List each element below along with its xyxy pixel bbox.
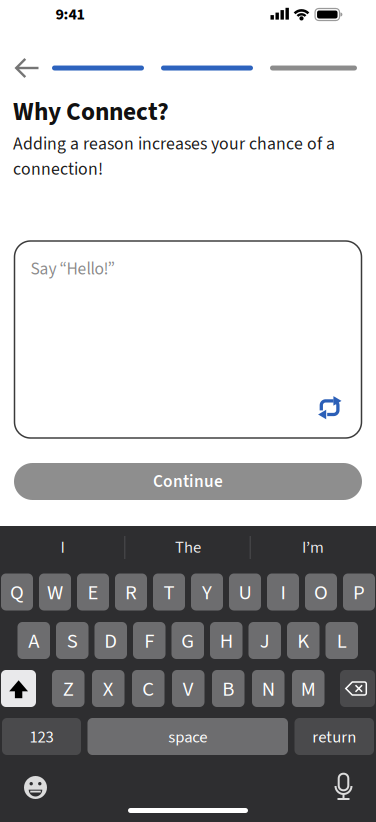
staticText: T: [163, 578, 174, 607]
staticText: G: [181, 627, 194, 656]
button[interactable]: Y: [191, 573, 223, 610]
button[interactable]: D: [94, 622, 127, 659]
button[interactable]: 123: [2, 718, 81, 755]
staticText: P: [353, 578, 365, 607]
staticText: N: [262, 675, 275, 704]
button[interactable]: Back: [0, 0, 376, 822]
staticText: W: [47, 578, 63, 607]
button[interactable]: space: [87, 718, 288, 755]
button[interactable]: F: [133, 622, 165, 659]
staticText: O: [314, 578, 328, 607]
button[interactable]: Q: [1, 573, 33, 610]
staticText: X: [103, 675, 114, 704]
staticText: J: [260, 627, 270, 656]
button[interactable]: Delete: [340, 670, 375, 707]
staticText: Say “Hello!”: [30, 256, 114, 281]
staticText: I: [60, 536, 64, 559]
button[interactable]: Emoji: [15, 767, 55, 807]
staticText: V: [183, 675, 194, 704]
button[interactable]: N: [252, 670, 284, 707]
staticText: H: [220, 627, 233, 656]
staticText: L: [337, 627, 347, 656]
staticText: Why Connect?: [13, 94, 169, 130]
button[interactable]: X: [92, 670, 124, 707]
button[interactable]: R: [115, 573, 147, 610]
button[interactable]: T: [153, 573, 185, 610]
button[interactable]: M: [292, 670, 324, 707]
button[interactable]: Z: [52, 670, 84, 707]
staticText: Y: [202, 578, 212, 607]
button[interactable]: P: [343, 573, 375, 610]
staticText: U: [238, 578, 251, 607]
button[interactable]: Continue: [14, 463, 362, 500]
staticText: I’m: [302, 536, 324, 559]
staticText: C: [142, 675, 154, 704]
staticText: M: [301, 675, 316, 704]
staticText: Continue: [153, 469, 223, 494]
button[interactable]: Dictation: [323, 767, 363, 807]
button[interactable]: S: [56, 622, 88, 659]
staticText: B: [222, 675, 234, 704]
staticText: S: [67, 627, 78, 656]
button[interactable]: I: [267, 573, 299, 610]
staticText: Z: [63, 675, 74, 704]
button[interactable]: E: [77, 573, 109, 610]
staticText: I: [280, 578, 285, 607]
staticText: 123: [29, 725, 53, 749]
staticText: K: [297, 627, 309, 656]
button[interactable]: U: [229, 573, 261, 610]
button[interactable]: W: [39, 573, 71, 610]
button[interactable]: Reason text field: [14, 241, 361, 438]
button[interactable]: I: [7, 530, 117, 564]
button[interactable]: return: [294, 718, 374, 755]
staticText: return: [312, 725, 356, 749]
staticText: Q: [10, 578, 24, 607]
button[interactable]: H: [210, 622, 242, 659]
staticText: The: [175, 536, 201, 559]
button[interactable]: A: [17, 622, 50, 659]
staticText: Adding a reason increases your chance of…: [13, 131, 335, 182]
staticText: R: [125, 578, 137, 607]
staticText: 9:41: [55, 3, 84, 26]
staticText: E: [87, 578, 98, 607]
button[interactable]: L: [325, 622, 358, 659]
button[interactable]: Shuffle suggestion: [314, 392, 344, 422]
staticText: A: [28, 627, 39, 656]
button[interactable]: C: [132, 670, 164, 707]
staticText: space: [168, 725, 207, 749]
button[interactable]: G: [171, 622, 204, 659]
button[interactable]: O: [305, 573, 337, 610]
button[interactable]: B: [212, 670, 244, 707]
button[interactable]: K: [287, 622, 319, 659]
button[interactable]: The: [133, 530, 243, 564]
button[interactable]: V: [172, 670, 204, 707]
button[interactable]: I’m: [258, 530, 368, 564]
staticText: F: [144, 627, 154, 656]
button[interactable]: Shift: [1, 670, 36, 707]
staticText: D: [104, 627, 117, 656]
button[interactable]: J: [248, 622, 281, 659]
